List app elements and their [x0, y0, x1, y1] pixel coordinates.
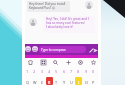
- staticText: Y: [63, 80, 66, 85]
- button[interactable]: Emoji: [25, 46, 31, 52]
- button[interactable]: R: [46, 77, 53, 85]
- button[interactable]: Emoji: [32, 46, 38, 52]
- button[interactable]: T: [53, 77, 60, 85]
- button[interactable]: 2: [31, 68, 38, 74]
- staticText: I: [78, 80, 80, 85]
- button[interactable]: 3: [39, 68, 46, 74]
- staticText: 9: [85, 69, 88, 74]
- button[interactable]: E: [39, 77, 46, 85]
- staticText: Hey there! Did you install Keyboard Plus…: [29, 2, 66, 10]
- button[interactable]: 4: [46, 68, 53, 74]
- staticText: 4: [48, 69, 51, 74]
- staticText: Type to compose: [41, 48, 66, 52]
- button[interactable]: P: [90, 77, 97, 85]
- button[interactable]: Settings: [77, 59, 84, 66]
- staticText: 3: [41, 69, 44, 74]
- button[interactable]: Resize: [65, 59, 72, 66]
- button[interactable]: Q: [24, 77, 31, 85]
- button[interactable]: Hey there! Did you install Keyboard Plus…: [27, 1, 70, 12]
- button[interactable]: Edit: [88, 47, 94, 53]
- staticText: 8: [77, 69, 80, 74]
- button[interactable]: Y: [61, 77, 68, 85]
- staticText: O: [85, 80, 88, 85]
- button[interactable]: Type to compose: [39, 46, 86, 53]
- staticText: E: [41, 80, 44, 85]
- button[interactable]: 9: [83, 68, 90, 74]
- staticText: T: [55, 80, 58, 85]
- button[interactable]: 8: [75, 68, 82, 74]
- staticText: 7: [70, 69, 73, 74]
- button[interactable]: I: [75, 77, 82, 85]
- button[interactable]: Theme: [27, 59, 34, 66]
- staticText: 5: [55, 69, 58, 74]
- button[interactable]: Layout: [40, 59, 47, 66]
- staticText: W: [33, 80, 37, 85]
- staticText: 1: [26, 69, 29, 74]
- staticText: 0: [92, 69, 95, 74]
- button[interactable]: Favorites: [90, 59, 97, 66]
- button[interactable]: U: [68, 77, 75, 85]
- button[interactable]: 7: [68, 68, 75, 74]
- button[interactable]: O: [83, 77, 90, 85]
- button[interactable]: 6: [61, 68, 68, 74]
- button[interactable]: 1: [24, 68, 31, 74]
- staticText: Hey! Yes, I did! It's great and I has so…: [46, 17, 89, 29]
- button[interactable]: 0: [90, 68, 97, 74]
- staticText: 6: [63, 69, 66, 74]
- button[interactable]: Search: [52, 59, 59, 66]
- staticText: P: [92, 80, 95, 85]
- button[interactable]: Send: [92, 47, 98, 53]
- button[interactable]: 5: [53, 68, 60, 74]
- button[interactable]: Hey! Yes, I did! It's great and I has so…: [44, 16, 95, 33]
- staticText: Q: [26, 80, 29, 85]
- button[interactable]: W: [31, 77, 38, 85]
- staticText: R: [48, 80, 51, 85]
- staticText: 2: [33, 69, 36, 74]
- staticText: U: [70, 80, 73, 85]
